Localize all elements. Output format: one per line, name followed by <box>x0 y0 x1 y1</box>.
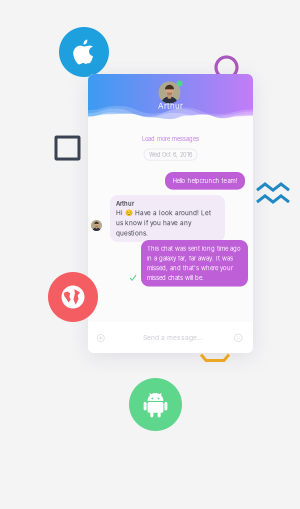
staticText: Load more messages <box>142 135 199 142</box>
staticText: This chat was sent long time ago in a ga… <box>147 245 241 281</box>
button[interactable]: Android <box>129 378 182 431</box>
staticText: Arthur <box>116 200 134 207</box>
button[interactable]: Load more messages <box>88 134 253 144</box>
staticText: Send a message... <box>143 333 203 342</box>
staticText: Arthur <box>158 101 183 111</box>
staticText: Hi 😊 Have a look around! Let us know if … <box>116 209 211 237</box>
button[interactable]: Emoji <box>232 331 245 344</box>
button[interactable]: Apple <box>59 27 109 77</box>
staticText: Hello helpcrunch team! <box>172 177 237 184</box>
button[interactable]: Attach <box>94 331 107 344</box>
staticText: Wed Oct 6, 2016 <box>149 151 192 158</box>
button[interactable]: Web <box>48 272 98 322</box>
